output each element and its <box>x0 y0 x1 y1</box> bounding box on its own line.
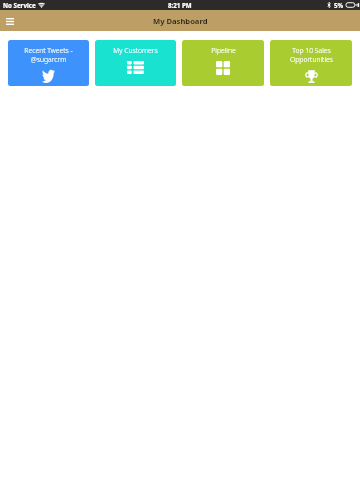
staticText: No Service <box>3 1 36 9</box>
staticText: My Customers <box>113 46 158 55</box>
staticText: Pipeline <box>211 46 236 55</box>
button[interactable]: Pipeline <box>182 40 264 86</box>
button[interactable]: Recent Tweets <box>8 40 89 86</box>
staticText: My Dashboard <box>153 16 208 26</box>
button[interactable]: My Customers <box>95 40 176 86</box>
button[interactable]: Top 10 Sales Opportunities <box>270 40 352 86</box>
button[interactable]: Open navigation menu <box>3 14 17 28</box>
staticText: Recent Tweets - @sugarcrm <box>24 46 73 64</box>
staticText: 5% <box>334 1 344 9</box>
staticText: 8:21 PM <box>168 1 192 9</box>
staticText: Top 10 Sales Opportunities <box>290 46 333 64</box>
